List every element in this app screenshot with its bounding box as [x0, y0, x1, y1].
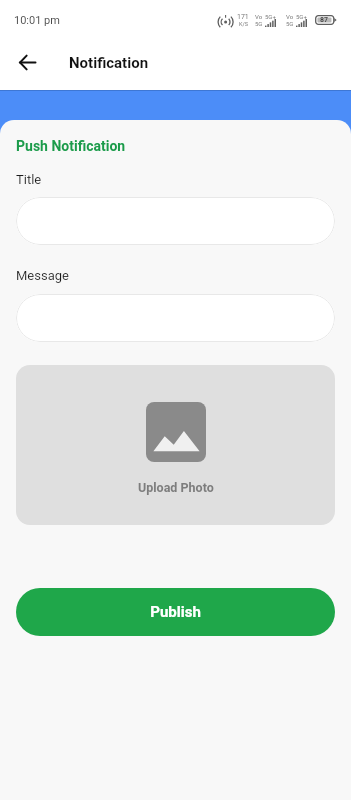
staticText: 5G [286, 20, 294, 27]
button[interactable]: Publish [16, 588, 335, 636]
staticText: Vo [286, 13, 294, 20]
button[interactable] [16, 294, 335, 342]
staticText: 5G+ [296, 13, 307, 20]
staticText: 5G+ [265, 13, 276, 20]
staticText: 10:01 pm [14, 14, 60, 27]
staticText: 171 [237, 13, 249, 21]
staticText: 5G [255, 20, 263, 27]
staticText: Publish [150, 603, 201, 621]
staticText: Message [16, 268, 69, 283]
button[interactable]: Back [7, 42, 47, 82]
button[interactable] [16, 197, 335, 245]
staticText: Title [16, 172, 42, 187]
staticText: Push Notification [16, 138, 126, 154]
staticText: Notification [69, 54, 149, 72]
staticText: K/S [239, 21, 248, 27]
staticText: Vo [255, 13, 263, 20]
staticText: 87 [320, 16, 329, 24]
button[interactable]: Upload Photo [16, 365, 335, 525]
staticText: Upload Photo [138, 480, 214, 495]
